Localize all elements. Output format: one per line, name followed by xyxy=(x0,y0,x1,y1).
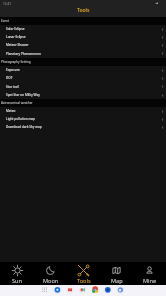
staticText: Meteor Shower xyxy=(6,43,29,47)
staticText: Tools xyxy=(77,7,90,14)
button[interactable]: Map xyxy=(100,262,133,285)
staticText: Meteo xyxy=(6,109,16,113)
button[interactable]: Exposure xyxy=(0,66,166,74)
staticText: Planetary Phenomenon xyxy=(6,52,41,56)
staticText: Sun xyxy=(12,277,22,285)
staticText: Tools xyxy=(77,277,91,285)
button[interactable]: Download dark Sky map xyxy=(0,123,166,131)
button[interactable]: Meteor Shower xyxy=(0,41,166,49)
staticText: Photography Setting xyxy=(1,60,31,64)
button[interactable]: Meteo xyxy=(0,107,166,115)
staticText: DOF xyxy=(6,76,13,80)
button[interactable]: Lunar Eclipse xyxy=(0,33,166,41)
staticText: Exposure xyxy=(6,68,20,72)
staticText: Spot Star on Milky Way xyxy=(6,93,40,97)
button[interactable]: Spot Star on Milky Way xyxy=(0,91,166,99)
button[interactable]: DOF xyxy=(0,74,166,82)
staticText: Download dark Sky map xyxy=(6,125,42,129)
staticText: Event xyxy=(1,19,10,23)
staticText: Solar Eclipse xyxy=(6,27,25,31)
staticText: Mine xyxy=(143,277,157,285)
button[interactable]: Planetary Phenomenon xyxy=(0,49,166,58)
button[interactable]: Light pollution map xyxy=(0,115,166,123)
staticText: Star trail xyxy=(6,85,19,89)
button[interactable]: Star trail xyxy=(0,82,166,91)
staticText: Moon xyxy=(43,277,59,285)
button[interactable]: Tools xyxy=(67,262,100,285)
button[interactable]: Moon xyxy=(34,262,67,285)
button[interactable]: Mine xyxy=(133,262,166,285)
staticText: Lunar Eclipse xyxy=(6,35,26,39)
staticText: Light pollution map xyxy=(6,117,36,121)
staticText: 12:41 xyxy=(3,2,12,6)
button[interactable]: Solar Eclipse xyxy=(0,25,166,33)
staticText: Astronomical weather xyxy=(1,101,33,105)
button[interactable]: Sun xyxy=(0,262,34,285)
staticText: Map xyxy=(111,277,123,285)
